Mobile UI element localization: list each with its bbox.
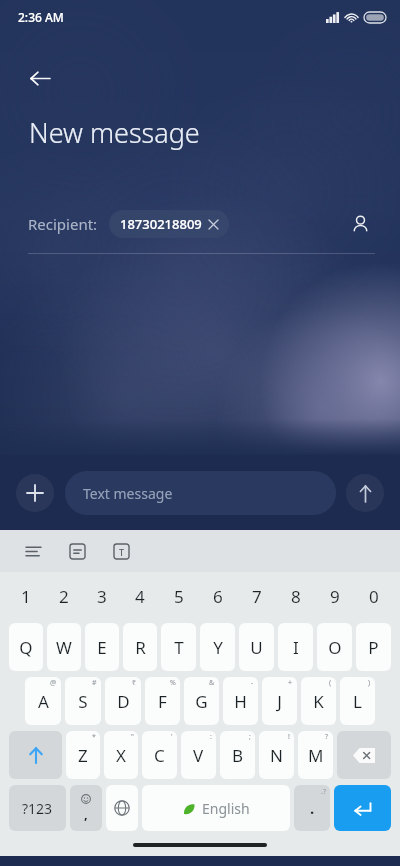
- button[interactable]: Add attachment: [16, 474, 54, 512]
- button[interactable]: J: [262, 677, 297, 725]
- button[interactable]: W: [47, 623, 81, 671]
- staticText: W: [56, 636, 72, 659]
- staticText: *: [92, 732, 96, 742]
- button[interactable]: 3: [83, 572, 121, 620]
- button[interactable]: 4: [121, 572, 159, 620]
- staticText: #: [92, 678, 97, 688]
- button[interactable]: L: [340, 677, 375, 725]
- button[interactable]: Q: [9, 623, 43, 671]
- staticText: A: [38, 690, 49, 713]
- staticText: D: [117, 690, 130, 713]
- staticText: Text message: [83, 484, 173, 503]
- button[interactable]: Back: [18, 56, 62, 100]
- staticText: 1: [21, 585, 31, 608]
- button[interactable]: Text settings: [106, 536, 136, 566]
- staticText: 18730218809: [120, 215, 202, 233]
- button[interactable]: M: [298, 731, 333, 779]
- staticText: .: [310, 798, 315, 818]
- staticText: Recipient:: [28, 214, 98, 234]
- button[interactable]: I: [278, 623, 313, 671]
- button[interactable]: 0: [354, 572, 393, 620]
- staticText: +: [288, 678, 293, 688]
- button[interactable]: English: [142, 785, 290, 831]
- button[interactable]: 5: [159, 572, 198, 620]
- button[interactable]: Change language: [106, 785, 138, 831]
- staticText: R: [135, 636, 146, 659]
- staticText: 6: [213, 585, 223, 608]
- staticText: C: [154, 744, 165, 767]
- staticText: T: [119, 546, 125, 558]
- button[interactable]: R: [123, 623, 157, 671]
- button[interactable]: X: [104, 731, 138, 779]
- button[interactable]: N: [259, 731, 294, 779]
- staticText: 2:36 AM: [18, 9, 64, 25]
- button[interactable]: A: [25, 677, 61, 725]
- staticText: G: [195, 690, 208, 713]
- button[interactable]: U: [239, 623, 274, 671]
- button[interactable]: T: [161, 623, 196, 671]
- staticText: M: [308, 744, 324, 767]
- staticText: .?: [321, 787, 326, 797]
- button[interactable]: Shift: [9, 731, 62, 779]
- button[interactable]: Menu: [18, 536, 48, 566]
- button[interactable]: D: [105, 677, 141, 725]
- button[interactable]: 1: [7, 572, 45, 620]
- staticText: U: [250, 636, 263, 659]
- staticText: @: [50, 678, 57, 688]
- button[interactable]: Enter: [334, 785, 391, 831]
- staticText: L: [353, 690, 362, 713]
- button[interactable]: Clipboard: [62, 536, 92, 566]
- staticText: Z: [78, 744, 88, 767]
- staticText: X: [116, 744, 126, 767]
- staticText: B: [232, 744, 244, 767]
- staticText: T: [174, 636, 184, 659]
- button[interactable]: G: [184, 677, 219, 725]
- button[interactable]: O: [317, 623, 352, 671]
- staticText: ,: [84, 805, 88, 823]
- staticText: 9: [330, 585, 340, 608]
- staticText: -: [251, 678, 254, 688]
- staticText: 4: [135, 585, 145, 608]
- button[interactable]: 6: [198, 572, 237, 620]
- button[interactable]: ?123: [9, 785, 66, 831]
- button[interactable]: Z: [66, 731, 100, 779]
- staticText: New message: [29, 114, 200, 151]
- staticText: (: [329, 678, 332, 688]
- button[interactable]: F: [145, 677, 180, 725]
- button[interactable]: C: [142, 731, 177, 779]
- staticText: 8: [291, 585, 301, 608]
- staticText: %: [170, 678, 176, 688]
- staticText: J: [277, 690, 282, 713]
- staticText: F: [158, 690, 167, 713]
- button[interactable]: B: [220, 731, 255, 779]
- staticText: K: [313, 690, 324, 713]
- staticText: 0: [369, 585, 379, 608]
- staticText: ): [368, 678, 371, 688]
- staticText: 7: [252, 585, 262, 608]
- button[interactable]: 7: [237, 572, 276, 620]
- button[interactable]: 18730218809: [109, 210, 229, 238]
- button[interactable]: ,: [70, 785, 102, 831]
- staticText: O: [328, 636, 342, 659]
- button[interactable]: Backspace: [337, 731, 391, 779]
- button[interactable]: K: [301, 677, 336, 725]
- staticText: I: [293, 636, 299, 659]
- button[interactable]: Send: [346, 474, 384, 512]
- staticText: 5: [174, 585, 184, 608]
- button[interactable]: Text message: [65, 471, 336, 515]
- button[interactable]: 9: [315, 572, 354, 620]
- button[interactable]: V: [181, 731, 216, 779]
- button[interactable]: .: [294, 785, 330, 831]
- staticText: V: [193, 744, 204, 767]
- button[interactable]: Y: [200, 623, 235, 671]
- button[interactable]: Choose contact: [340, 204, 380, 244]
- button[interactable]: 8: [276, 572, 315, 620]
- staticText: N: [270, 744, 283, 767]
- button[interactable]: H: [223, 677, 258, 725]
- button[interactable]: 2: [45, 572, 83, 620]
- staticText: 3: [97, 585, 107, 608]
- button[interactable]: E: [85, 623, 119, 671]
- staticText: P: [368, 636, 379, 659]
- button[interactable]: P: [356, 623, 391, 671]
- button[interactable]: S: [65, 677, 101, 725]
